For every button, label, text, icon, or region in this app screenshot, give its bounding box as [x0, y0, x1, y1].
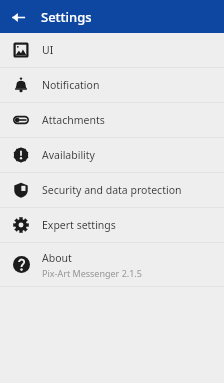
button[interactable]: Availability — [0, 138, 224, 172]
button[interactable]: UI — [0, 33, 224, 67]
button[interactable]: Security and data protection — [0, 173, 224, 207]
button[interactable]: Expert settings — [0, 208, 224, 242]
button[interactable]: About — [0, 243, 224, 286]
staticText: Notification — [42, 78, 100, 92]
staticText: Settings — [41, 8, 92, 26]
staticText: Availability — [42, 148, 95, 162]
button[interactable]: Back — [6, 5, 30, 29]
staticText: Security and data protection — [42, 183, 182, 197]
button[interactable]: Notification — [0, 68, 224, 102]
button[interactable]: Attachments — [0, 103, 224, 137]
staticText: About — [42, 251, 72, 265]
staticText: Pix-Art Messenger 2.1.5 — [42, 267, 142, 279]
staticText: UI — [42, 43, 54, 57]
staticText: Expert settings — [42, 218, 116, 232]
staticText: Attachments — [42, 113, 105, 127]
